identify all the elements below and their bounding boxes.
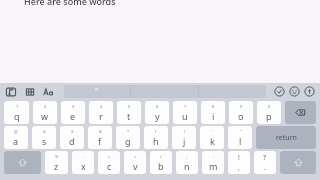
button[interactable]: Shift	[4, 151, 41, 174]
staticText: ,	[238, 163, 240, 173]
button[interactable]: 3	[61, 101, 85, 124]
staticText: &	[99, 129, 102, 134]
staticText: e	[70, 110, 76, 122]
button[interactable]: -	[72, 151, 94, 174]
staticText: '	[212, 129, 213, 134]
staticText: j	[183, 135, 186, 147]
button[interactable]: Format paste	[5, 86, 17, 98]
button[interactable]: Keyboard grid	[24, 86, 36, 98]
button[interactable]: 0	[257, 101, 281, 124]
staticText: #	[43, 129, 46, 134]
button[interactable]: Shift right	[280, 151, 316, 174]
button[interactable]: ?	[254, 151, 276, 174]
staticText: "	[95, 86, 99, 97]
staticText: b	[158, 160, 164, 172]
button[interactable]: @	[4, 126, 28, 149]
button[interactable]: ;	[176, 151, 198, 174]
staticText: @	[14, 129, 18, 134]
button[interactable]: /	[150, 151, 172, 174]
staticText: c	[107, 160, 112, 172]
staticText: *	[127, 129, 130, 134]
staticText: =	[134, 154, 137, 159]
staticText: )	[184, 129, 186, 134]
staticText: 0	[268, 104, 271, 109]
staticText: s	[42, 135, 47, 147]
button[interactable]: &	[88, 126, 112, 149]
staticText: l	[239, 135, 242, 147]
button[interactable]: )	[172, 126, 196, 149]
staticText: 8	[212, 104, 215, 109]
staticText: y	[155, 110, 160, 122]
button[interactable]: Accept suggestion	[274, 86, 285, 97]
staticText: .	[264, 163, 266, 173]
staticText: o	[238, 110, 244, 122]
button[interactable]: =	[124, 151, 146, 174]
staticText: q	[14, 110, 20, 122]
staticText: %	[55, 154, 59, 159]
button[interactable]: (	[144, 126, 168, 149]
staticText: h	[153, 135, 159, 147]
staticText: v	[133, 160, 138, 172]
staticText: ?	[263, 153, 267, 163]
button[interactable]: "	[228, 126, 252, 149]
button[interactable]: 7	[173, 101, 197, 124]
staticText: +	[108, 154, 111, 159]
staticText: $	[71, 129, 74, 134]
staticText: /	[160, 154, 162, 159]
staticText: x	[81, 160, 86, 172]
staticText: i	[212, 110, 215, 122]
staticText: d	[69, 135, 75, 147]
button[interactable]: #	[32, 126, 56, 149]
staticText: "	[240, 129, 242, 134]
staticText: Here are some words	[24, 0, 116, 7]
staticText: m	[209, 160, 218, 172]
button[interactable]: 2	[33, 101, 57, 124]
button[interactable]: 4	[89, 101, 113, 124]
staticText: k	[210, 135, 215, 147]
staticText: 2	[44, 104, 47, 109]
staticText: (	[155, 129, 157, 134]
staticText: a	[13, 135, 19, 147]
staticText: 4	[100, 104, 103, 109]
button[interactable]: Microphone	[304, 86, 315, 97]
staticText: w	[41, 110, 49, 122]
staticText: z	[54, 160, 59, 172]
button[interactable]: 6	[145, 101, 169, 124]
staticText: ;	[186, 154, 188, 159]
staticText: g	[125, 135, 131, 147]
staticText: :	[213, 154, 215, 159]
button[interactable]: 5	[117, 101, 141, 124]
staticText: 3	[72, 104, 75, 109]
button[interactable]: %	[45, 151, 68, 174]
button[interactable]: $	[60, 126, 84, 149]
button[interactable]: 9	[229, 101, 253, 124]
button[interactable]: !	[228, 151, 250, 174]
staticText: 5	[128, 104, 131, 109]
staticText: p	[266, 110, 272, 122]
button[interactable]: *	[116, 126, 140, 149]
staticText: -	[83, 154, 85, 159]
button[interactable]: :	[202, 151, 224, 174]
button[interactable]: 8	[201, 101, 225, 124]
staticText: t	[127, 110, 131, 122]
button[interactable]: '	[200, 126, 224, 149]
staticText: 6	[156, 104, 159, 109]
button[interactable]: Backspace	[285, 101, 316, 124]
staticText: f	[98, 135, 102, 147]
staticText: 7	[184, 104, 187, 109]
staticText: 9	[240, 104, 243, 109]
staticText: 1	[16, 104, 19, 109]
button[interactable]: +	[98, 151, 120, 174]
button[interactable]: return	[256, 126, 316, 149]
staticText: n	[184, 160, 190, 172]
button[interactable]: Emoji	[289, 86, 300, 97]
button[interactable]: Here are some words	[24, 0, 116, 7]
staticText: return	[276, 133, 297, 143]
button[interactable]: 1	[4, 101, 29, 124]
staticText: r	[99, 110, 103, 122]
staticText: !	[238, 153, 240, 163]
button[interactable]: Text style Aa	[43, 86, 55, 98]
